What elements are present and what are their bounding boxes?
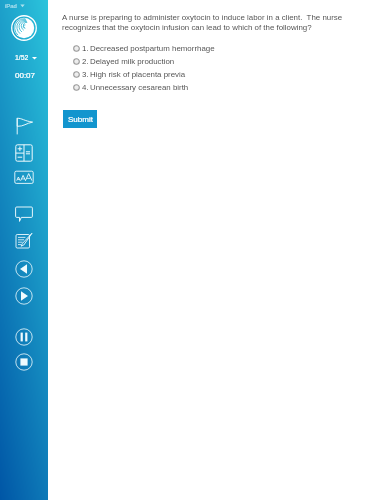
button[interactable]: End block (11, 349, 37, 375)
button[interactable]: 1/52 (15, 54, 37, 62)
button[interactable]: Calculator (11, 140, 37, 166)
staticText: Unnecessary cesarean birth (90, 83, 189, 92)
staticText: Submit (68, 115, 93, 124)
button[interactable]: Submit (63, 110, 97, 128)
staticText: 3. (82, 70, 89, 79)
staticText: 00:07 (15, 71, 36, 80)
staticText: Delayed milk production (90, 57, 175, 66)
button[interactable]: Flag question (11, 113, 37, 139)
staticText: Decreased postpartum hemorrhage (90, 44, 215, 53)
staticText: iPad (5, 3, 17, 9)
button[interactable]: 4. (48, 81, 375, 94)
button[interactable]: 2. (48, 55, 375, 68)
button[interactable]: Next question (11, 283, 37, 309)
staticText: A nurse is preparing to administer oxyto… (62, 13, 353, 32)
button[interactable]: 3. (48, 68, 375, 81)
staticText: 2. (82, 57, 89, 66)
button[interactable]: UWorld (11, 15, 37, 41)
button[interactable]: Text size (11, 164, 37, 190)
button[interactable]: Pause (11, 324, 37, 350)
staticText: 1. (82, 44, 89, 53)
button[interactable]: Feedback (11, 203, 37, 229)
staticText: 4. (82, 83, 89, 92)
button[interactable]: Previous question (11, 256, 37, 282)
staticText: High risk of placenta previa (90, 70, 186, 79)
staticText: 1/52 (15, 54, 29, 62)
button[interactable]: Notes (11, 229, 37, 255)
button[interactable]: 1. (48, 42, 375, 55)
